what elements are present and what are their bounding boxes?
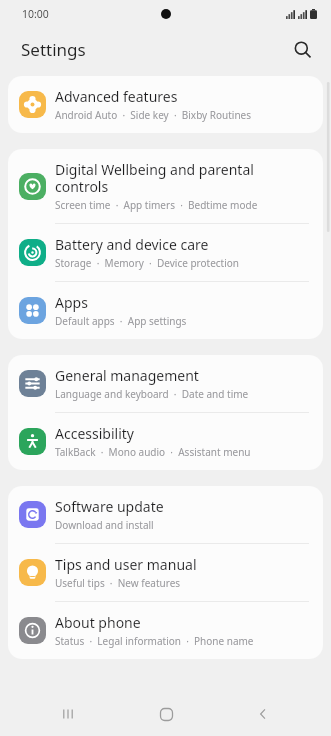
staticText: Default apps · App settings	[55, 314, 187, 328]
staticText: Accessibility	[55, 424, 134, 443]
button[interactable]: Recent apps	[38, 694, 98, 734]
button[interactable]: Tips and user manual	[8, 544, 323, 601]
button[interactable]: Apps	[8, 282, 323, 339]
staticText: Useful tips · New features	[55, 576, 181, 590]
staticText: Digital Wellbeing and parental controls	[55, 160, 309, 196]
staticText: Battery and device care	[55, 235, 209, 254]
staticText: Screen time · App timers · Bedtime mode	[55, 198, 258, 212]
button[interactable]: Accessibility	[8, 413, 323, 470]
button[interactable]: Advanced features	[8, 76, 323, 133]
staticText: TalkBack · Mono audio · Assistant menu	[55, 445, 251, 459]
staticText: 10:00	[22, 7, 49, 21]
button[interactable]: Digital Wellbeing and parental controls	[8, 149, 323, 223]
staticText: Language and keyboard · Date and time	[55, 387, 249, 401]
staticText: About phone	[55, 613, 141, 632]
staticText: Settings	[21, 38, 86, 61]
staticText: Status · Legal information · Phone name	[55, 634, 254, 648]
staticText: Storage · Memory · Device protection	[55, 256, 240, 270]
staticText: Android Auto · Side key · Bixby Routines	[55, 108, 252, 122]
button[interactable]: Back	[233, 694, 293, 734]
button[interactable]: Software update	[8, 486, 323, 543]
button[interactable]: Battery and device care	[8, 224, 323, 281]
staticText: Apps	[55, 293, 88, 312]
staticText: Advanced features	[55, 87, 178, 106]
button[interactable]: General management	[8, 355, 323, 412]
staticText: Download and install	[55, 518, 154, 532]
staticText: Tips and user manual	[55, 555, 197, 574]
staticText: Software update	[55, 497, 164, 516]
button[interactable]: Home	[136, 694, 196, 734]
staticText: General management	[55, 366, 199, 385]
button[interactable]: About phone	[8, 602, 323, 659]
button[interactable]: Search	[285, 32, 319, 66]
